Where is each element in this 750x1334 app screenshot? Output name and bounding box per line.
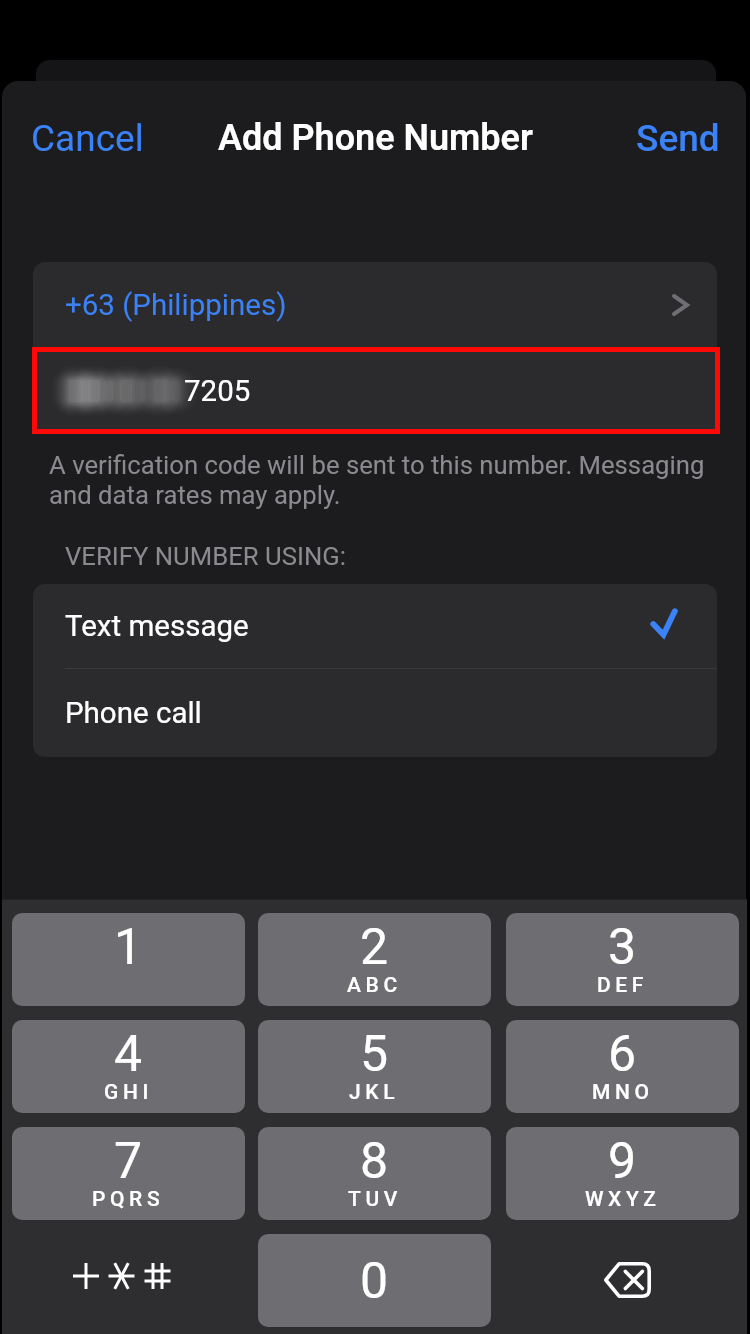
staticText: DEF: [597, 973, 648, 998]
staticText: 0: [360, 1252, 389, 1311]
staticText: Phone call: [65, 696, 202, 731]
button[interactable]: Plus, star and hash: [12, 1234, 245, 1327]
staticText: MNO: [592, 1080, 654, 1105]
staticText: WXYZ: [585, 1187, 661, 1212]
staticText: Cancel: [31, 117, 144, 160]
staticText: 3: [608, 918, 637, 977]
button[interactable]: 5: [258, 1020, 491, 1113]
button[interactable]: Text message: [33, 584, 717, 668]
staticText: 1: [114, 918, 143, 977]
staticText: A verification code will be sent to this…: [49, 450, 705, 480]
staticText: GHI: [104, 1080, 153, 1105]
staticText: VERIFY NUMBER USING:: [65, 541, 346, 571]
button[interactable]: 2: [258, 913, 491, 1006]
staticText: PQRS: [92, 1187, 165, 1212]
staticText: +63 (Philippines): [65, 288, 287, 323]
staticText: JKL: [349, 1080, 400, 1105]
staticText: 9: [608, 1132, 637, 1191]
button[interactable]: 4: [12, 1020, 245, 1113]
staticText: 5: [360, 1025, 389, 1084]
staticText: 7205: [184, 374, 251, 409]
staticText: Send: [636, 117, 720, 160]
staticText: 2: [360, 918, 389, 977]
staticText: TUV: [348, 1187, 402, 1212]
staticText: 6: [608, 1025, 637, 1084]
staticText: 4: [114, 1025, 143, 1084]
staticText: and data rates may apply.: [49, 480, 341, 510]
button[interactable]: 7: [12, 1127, 245, 1220]
staticText: 7: [114, 1132, 143, 1191]
staticText: Add Phone Number: [218, 117, 533, 159]
button[interactable]: 0: [258, 1234, 491, 1327]
button[interactable]: Cancel: [17, 111, 158, 166]
staticText: ABC: [347, 973, 402, 998]
staticText: 8: [360, 1132, 389, 1191]
button[interactable]: Phone call: [33, 669, 717, 757]
button[interactable]: 1: [12, 913, 245, 1006]
button[interactable]: +63 (Philippines): [33, 262, 717, 348]
staticText: Text message: [65, 609, 249, 644]
button[interactable]: 6: [506, 1020, 739, 1113]
button[interactable]: 8: [258, 1127, 491, 1220]
button[interactable]: 3: [506, 913, 739, 1006]
button[interactable]: Send: [624, 111, 732, 166]
button[interactable]: 9: [506, 1127, 739, 1220]
button[interactable]: 7205: [33, 348, 717, 434]
button[interactable]: Backspace: [506, 1234, 739, 1327]
